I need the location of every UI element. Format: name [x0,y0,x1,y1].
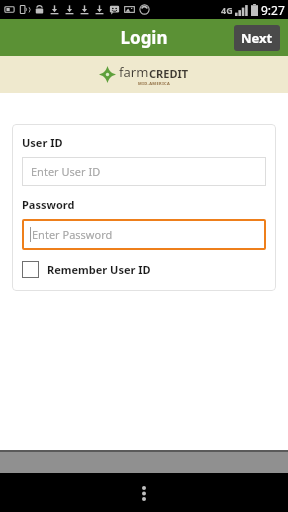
staticText: Password [22,197,75,212]
button[interactable]: Remember User ID [22,261,151,278]
button[interactable]: Enter Password [22,219,266,250]
staticText: 4G [221,4,233,16]
staticText: Enter Password [32,227,113,242]
button[interactable]: More options [127,476,161,510]
staticText: CREDIT [149,66,189,81]
staticText: Enter User ID [31,164,101,179]
staticText: Login [120,26,168,49]
staticText: 9:27 [261,2,285,18]
staticText: Next [241,29,273,47]
staticText: farm [119,63,149,81]
staticText: Remember User ID [47,262,151,277]
button[interactable]: Next [234,25,280,51]
staticText: User ID [22,135,63,150]
staticText: MID-AMERICA [138,81,171,86]
button[interactable]: Enter User ID [22,157,266,186]
